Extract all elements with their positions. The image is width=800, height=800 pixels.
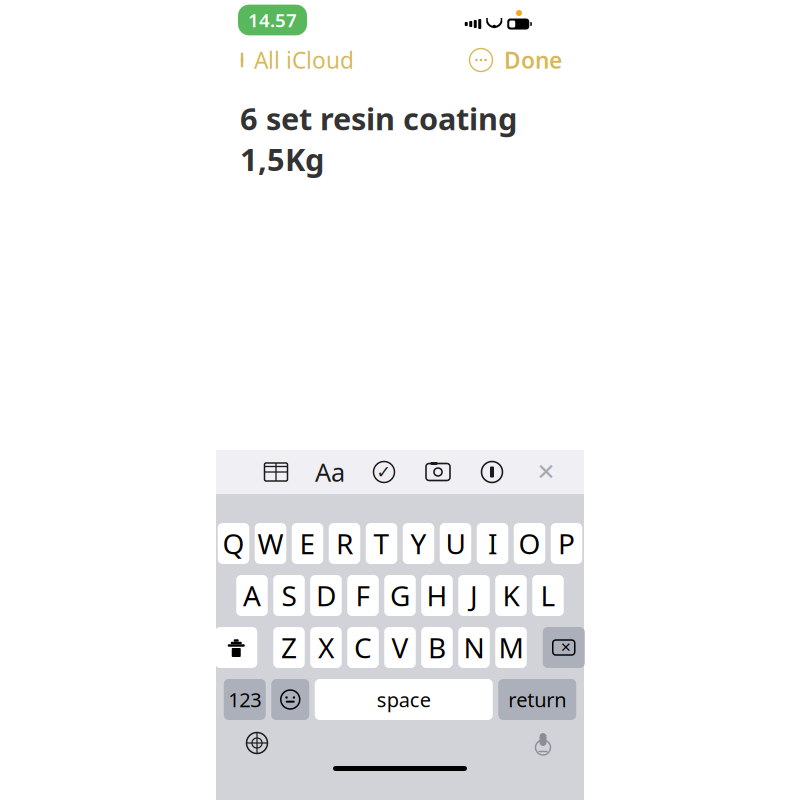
staticText: K	[502, 577, 519, 614]
button[interactable]: W	[255, 523, 286, 564]
button[interactable]: P	[551, 523, 582, 564]
staticText: M	[498, 629, 523, 666]
staticText: 6 set resin coating 1,5Kg	[240, 98, 517, 179]
button[interactable]: Y	[403, 523, 434, 564]
staticText: O	[518, 525, 540, 562]
button[interactable]: S	[273, 575, 305, 616]
button[interactable]: O	[514, 523, 545, 564]
button[interactable]: Done	[498, 39, 562, 81]
button[interactable]: I	[477, 523, 508, 564]
staticText: G	[390, 577, 410, 614]
staticText: P	[558, 525, 575, 562]
button[interactable]: Delete	[543, 627, 585, 668]
button[interactable]: C	[347, 627, 379, 668]
button[interactable]: D	[310, 575, 342, 616]
button[interactable]: T	[366, 523, 397, 564]
button[interactable]: Hide keyboard	[523, 451, 569, 493]
button[interactable]: E	[292, 523, 323, 564]
staticText: H	[426, 577, 447, 614]
button[interactable]: J	[458, 575, 490, 616]
button[interactable]: Dictation	[526, 726, 560, 760]
staticText: J	[470, 577, 478, 614]
button[interactable]: U	[440, 523, 471, 564]
button[interactable]: M	[495, 627, 527, 668]
staticText: L	[540, 577, 555, 614]
button[interactable]: Format	[307, 451, 353, 493]
button[interactable]: Z	[273, 627, 305, 668]
staticText: ✕	[536, 459, 555, 485]
staticText: Y	[410, 525, 426, 562]
button[interactable]: G	[384, 575, 416, 616]
button[interactable]: Markup	[469, 451, 515, 493]
staticText: A	[243, 577, 261, 614]
staticText: 123	[228, 686, 261, 713]
staticText: W	[257, 525, 283, 562]
button[interactable]: L	[532, 575, 564, 616]
button[interactable]: Checklist	[361, 451, 407, 493]
button[interactable]: X	[310, 627, 342, 668]
staticText: return	[508, 686, 566, 713]
staticText: Q	[222, 525, 244, 562]
staticText: N	[463, 629, 484, 666]
button[interactable]: V	[384, 627, 416, 668]
button[interactable]: More options	[464, 43, 498, 77]
staticText: R	[336, 525, 353, 562]
staticText: space	[377, 686, 431, 713]
staticText: X	[318, 629, 334, 666]
staticText: Done	[504, 45, 562, 75]
button[interactable]: return	[498, 679, 576, 720]
button[interactable]: space	[315, 679, 493, 720]
staticText: F	[355, 577, 370, 614]
staticText: T	[373, 525, 389, 562]
button[interactable]: Shift	[215, 627, 257, 668]
button[interactable]: A	[236, 575, 268, 616]
staticText: 14.57	[248, 8, 297, 32]
button[interactable]: Q	[218, 523, 249, 564]
button[interactable]: 123	[224, 679, 266, 720]
button[interactable]: H	[421, 575, 453, 616]
button[interactable]: K	[495, 575, 527, 616]
button[interactable]: All iCloud	[238, 39, 354, 81]
button[interactable]: Camera	[415, 451, 461, 493]
staticText: E	[299, 525, 315, 562]
button[interactable]: Table	[253, 451, 299, 493]
button[interactable]: Switch keyboard	[240, 726, 274, 760]
button[interactable]: F	[347, 575, 379, 616]
button[interactable]: R	[329, 523, 360, 564]
staticText: ✕	[560, 640, 571, 655]
staticText: ✓	[376, 462, 391, 482]
staticText: C	[354, 629, 372, 666]
staticText: Aa	[315, 455, 345, 489]
staticText: V	[391, 629, 408, 666]
staticText: I	[488, 525, 497, 562]
staticText: Z	[281, 629, 297, 666]
staticText: B	[428, 629, 446, 666]
staticText: D	[316, 577, 336, 614]
button[interactable]: Emoji	[271, 679, 309, 720]
staticText: U	[445, 525, 465, 562]
button[interactable]: B	[421, 627, 453, 668]
button[interactable]: N	[458, 627, 490, 668]
staticText: S	[281, 577, 296, 614]
staticText: All iCloud	[254, 45, 354, 75]
